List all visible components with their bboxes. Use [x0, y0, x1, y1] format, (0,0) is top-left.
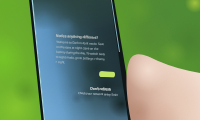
button[interactable] — [99, 71, 115, 78]
button[interactable]: Don't refresh — [90, 85, 111, 90]
staticText: Check your network every 5min — [78, 91, 118, 97]
button[interactable]: Notice anything different? — [56, 33, 99, 40]
staticText: Welcome to Dark in dark mode. Save on th… — [55, 40, 117, 67]
